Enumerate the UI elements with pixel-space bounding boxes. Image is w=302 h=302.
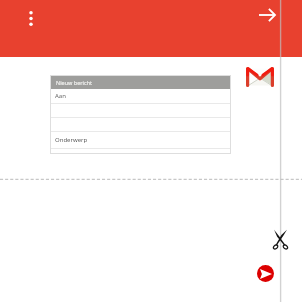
button[interactable]: Onderwerp — [50, 132, 231, 148]
button[interactable]: Cut — [272, 229, 289, 250]
button[interactable]: More options — [22, 5, 39, 31]
staticText: Onderwerp — [55, 136, 88, 144]
button[interactable]: Send — [257, 265, 274, 282]
button[interactable]: Cc — [50, 104, 231, 117]
button[interactable]: Aan — [50, 89, 231, 103]
button[interactable]: Next — [254, 4, 280, 25]
staticText: Aan — [55, 92, 66, 100]
button[interactable]: Bcc — [50, 118, 231, 131]
button[interactable]: Gmail — [246, 67, 274, 87]
staticText: Nieuw bericht — [56, 79, 93, 86]
